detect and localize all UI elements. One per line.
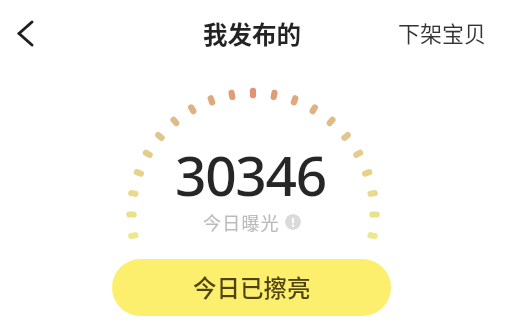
staticText: 今日已擦亮 (193, 270, 311, 304)
staticText: 我发布的 (203, 16, 301, 51)
button[interactable]: 今日已擦亮 (112, 259, 391, 316)
button[interactable]: 下架宝贝 (394, 12, 491, 52)
staticText: 30346 (175, 137, 326, 212)
staticText: 今日曝光 (203, 209, 280, 235)
button[interactable]: Back (6, 14, 45, 53)
button[interactable]: About today's exposure (285, 214, 301, 230)
staticText: 下架宝贝 (398, 16, 487, 48)
